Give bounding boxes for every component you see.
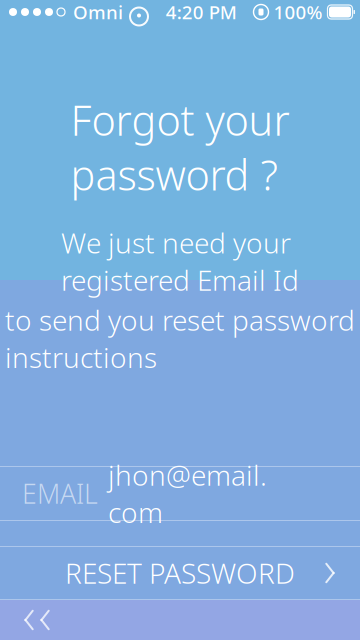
staticText: 100% — [273, 0, 322, 24]
staticText: jhon@email.com — [108, 456, 267, 531]
staticText: EMAIL — [22, 476, 98, 511]
staticText: RESET PASSWORD — [65, 554, 295, 592]
staticText: to send you reset password instructions — [5, 301, 355, 376]
button[interactable]: Back — [0, 600, 360, 640]
staticText: Forgot your password ? — [70, 92, 289, 202]
staticText: Omni — [73, 0, 123, 24]
button[interactable]: RESET PASSWORD — [0, 547, 360, 599]
staticText: 4:20 PM — [166, 0, 237, 24]
button[interactable]: EMAIL — [0, 467, 360, 520]
staticText: We just need your registered Email Id — [61, 224, 299, 298]
